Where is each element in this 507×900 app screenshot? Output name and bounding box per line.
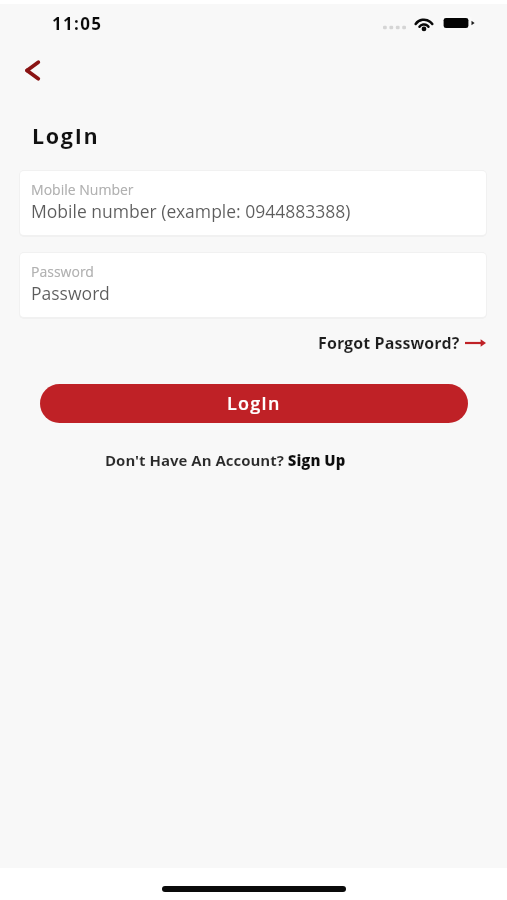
- staticText: Password: [31, 281, 110, 305]
- staticText: Don't Have An Account? Sign Up: [105, 450, 346, 470]
- button[interactable]: Mobile Number: [20, 171, 486, 235]
- staticText: Mobile Number: [31, 180, 134, 199]
- staticText: Mobile number (example: 0944883388): [31, 199, 351, 223]
- button[interactable]: Password: [20, 253, 486, 317]
- button[interactable]: LogIn: [40, 384, 468, 423]
- staticText: Forgot Password?: [318, 332, 460, 354]
- button[interactable]: Forgot Password?: [310, 327, 501, 359]
- button[interactable]: Don't Have An Account? Sign Up: [100, 445, 351, 475]
- staticText: 11:05: [52, 12, 103, 35]
- staticText: LogIn: [227, 391, 281, 416]
- staticText: Password: [31, 262, 94, 281]
- staticText: LogIn: [32, 121, 100, 150]
- button[interactable]: Back: [5, 48, 59, 92]
